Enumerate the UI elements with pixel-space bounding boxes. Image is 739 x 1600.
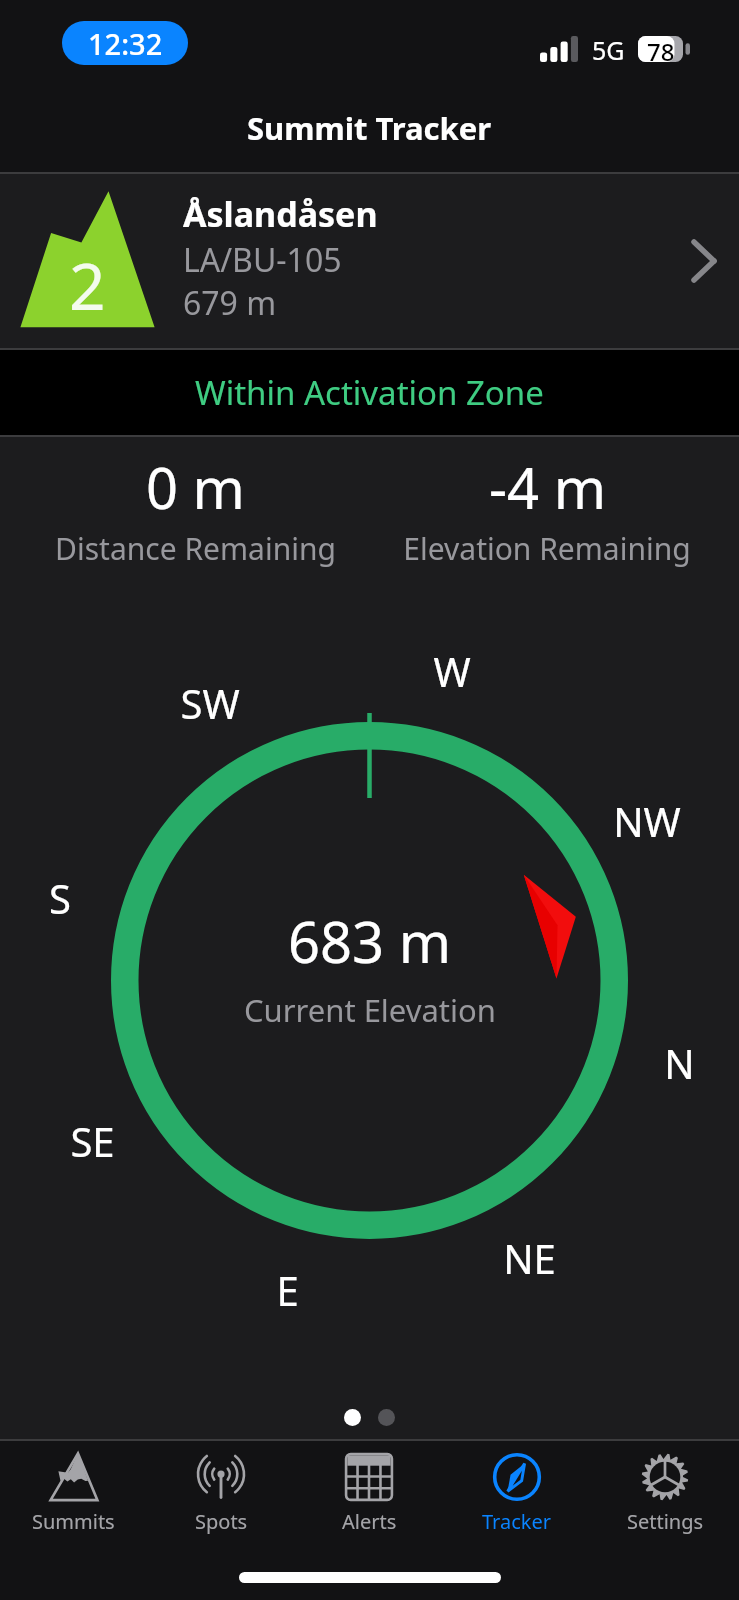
staticText: LA/BU-105 bbox=[183, 238, 342, 282]
staticText: 2 bbox=[69, 242, 106, 329]
staticText: -4 m bbox=[489, 449, 606, 525]
button[interactable]: Spots bbox=[147, 1441, 295, 1551]
staticText: 0 m bbox=[146, 449, 245, 525]
staticText: Tracker bbox=[482, 1508, 552, 1535]
staticText: Spots bbox=[195, 1508, 248, 1535]
staticText: Åslandåsen bbox=[183, 191, 378, 237]
button[interactable]: Settings bbox=[591, 1441, 739, 1551]
staticText: Elevation Remaining bbox=[403, 528, 691, 569]
staticText: NE bbox=[503, 1231, 556, 1285]
staticText: Summits bbox=[32, 1508, 115, 1535]
button[interactable]: 2 bbox=[0, 174, 739, 348]
staticText: 679 m bbox=[183, 281, 277, 325]
button[interactable]: Summits bbox=[0, 1441, 147, 1551]
staticText: 5G bbox=[592, 33, 625, 67]
staticText: Within Activation Zone bbox=[195, 370, 544, 415]
staticText: Summit Tracker bbox=[247, 107, 492, 149]
staticText: Current Elevation bbox=[244, 989, 496, 1031]
button[interactable]: Tracker bbox=[443, 1441, 591, 1551]
staticText: Alerts bbox=[342, 1508, 397, 1535]
staticText: E bbox=[276, 1263, 299, 1317]
staticText: S bbox=[49, 871, 71, 925]
staticText: W bbox=[433, 644, 471, 698]
staticText: Settings bbox=[627, 1508, 704, 1535]
staticText: 683 m bbox=[288, 903, 452, 979]
staticText: N bbox=[664, 1036, 695, 1090]
staticText: 78 bbox=[647, 35, 675, 61]
button[interactable]: Alerts bbox=[295, 1441, 443, 1551]
staticText: SE bbox=[70, 1114, 115, 1168]
staticText: NW bbox=[613, 794, 681, 848]
staticText: Distance Remaining bbox=[55, 528, 336, 569]
staticText: 12:32 bbox=[88, 24, 163, 63]
staticText: SW bbox=[180, 676, 240, 730]
